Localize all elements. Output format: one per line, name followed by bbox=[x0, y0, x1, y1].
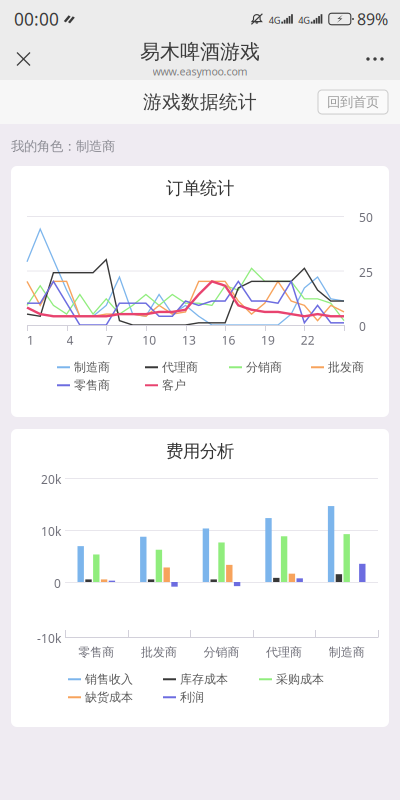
staticText: 25 bbox=[359, 264, 373, 280]
staticText: 4 bbox=[67, 332, 74, 348]
button[interactable]: More options bbox=[355, 40, 395, 77]
staticText: 代理商 bbox=[266, 645, 302, 660]
staticText: 50 bbox=[359, 209, 373, 225]
staticText: 分销商 bbox=[246, 360, 282, 375]
staticText: 10 bbox=[142, 332, 156, 348]
staticText: 4G bbox=[298, 14, 310, 26]
staticText: 代理商 bbox=[162, 360, 198, 375]
staticText: 批发商 bbox=[141, 645, 177, 660]
staticText: 13 bbox=[182, 332, 196, 348]
staticText: -10k bbox=[37, 630, 61, 646]
staticText: 00:00 bbox=[14, 7, 59, 30]
staticText: 我的角色：制造商 bbox=[11, 138, 115, 154]
staticText: 89% bbox=[357, 8, 388, 30]
staticText: 0 bbox=[54, 575, 61, 591]
staticText: 零售商 bbox=[78, 645, 114, 660]
staticText: 游戏数据统计 bbox=[143, 90, 257, 113]
staticText: 4G bbox=[269, 14, 281, 26]
button[interactable]: Close bbox=[5, 40, 42, 77]
staticText: 22 bbox=[301, 332, 315, 348]
button[interactable]: 回到首页 bbox=[318, 90, 388, 114]
staticText: 易木啤酒游戏 bbox=[140, 40, 260, 64]
staticText: 0 bbox=[359, 318, 366, 334]
staticText: 10k bbox=[41, 523, 61, 539]
staticText: 订单统计 bbox=[166, 178, 234, 199]
staticText: 利润 bbox=[180, 690, 204, 705]
staticText: 制造商 bbox=[74, 360, 110, 375]
staticText: 销售收入 bbox=[85, 672, 133, 687]
staticText: 客户 bbox=[162, 378, 186, 393]
staticText: 库存成本 bbox=[180, 672, 228, 687]
staticText: 制造商 bbox=[329, 645, 365, 660]
staticText: 缺货成本 bbox=[85, 690, 133, 705]
staticText: www.easymoo.com bbox=[152, 64, 247, 78]
staticText: 16 bbox=[221, 332, 235, 348]
staticText: 1 bbox=[27, 332, 34, 348]
staticText: 回到首页 bbox=[327, 94, 379, 110]
staticText: 批发商 bbox=[328, 360, 364, 375]
staticText: 分销商 bbox=[203, 645, 239, 660]
staticText: 零售商 bbox=[74, 378, 110, 393]
staticText: 采购成本 bbox=[276, 672, 324, 687]
staticText: 20k bbox=[41, 471, 61, 487]
staticText: 19 bbox=[261, 332, 275, 348]
staticText: 费用分析 bbox=[166, 441, 234, 462]
staticText: 7 bbox=[106, 332, 113, 348]
